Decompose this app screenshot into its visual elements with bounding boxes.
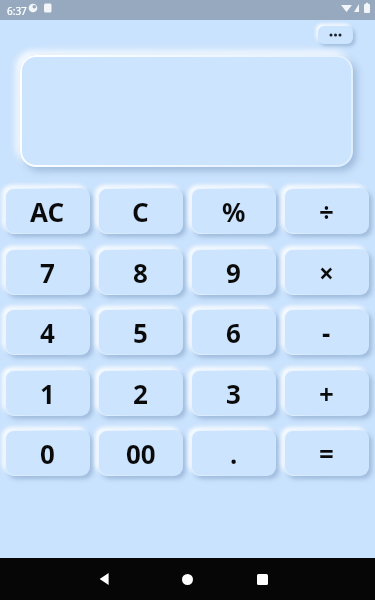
button[interactable]: = [284, 430, 369, 476]
button[interactable]: % [191, 188, 276, 234]
staticText: . [230, 436, 238, 471]
button[interactable]: 00 [98, 430, 183, 476]
staticText: 0 [40, 436, 55, 471]
staticText: 6 [226, 315, 241, 350]
button[interactable]: 8 [98, 249, 183, 295]
button[interactable]: 3 [191, 370, 276, 416]
button[interactable]: 5 [98, 309, 183, 355]
button[interactable]: 0 [5, 430, 90, 476]
staticText: 6:37 [7, 4, 27, 18]
staticText: 2 [133, 376, 148, 411]
button[interactable] [81, 558, 129, 600]
staticText: 8 [133, 255, 148, 290]
staticText: 7 [40, 255, 55, 290]
staticText: AC [30, 194, 65, 229]
button[interactable]: . [191, 430, 276, 476]
button[interactable]: 1 [5, 370, 90, 416]
button[interactable]: ÷ [284, 188, 369, 234]
staticText: 1 [40, 376, 55, 411]
staticText: 4 [40, 315, 55, 350]
staticText: 9 [226, 255, 241, 290]
button[interactable]: AC [5, 188, 90, 234]
button[interactable]: × [284, 249, 369, 295]
button[interactable]: 6 [191, 309, 276, 355]
staticText: + [319, 376, 334, 411]
staticText: 3 [226, 376, 241, 411]
button[interactable] [163, 558, 211, 600]
button[interactable]: 7 [5, 249, 90, 295]
staticText: = [319, 436, 334, 471]
button[interactable]: 4 [5, 309, 90, 355]
button[interactable]: 2 [98, 370, 183, 416]
staticText: - [322, 315, 331, 350]
staticText: % [222, 194, 246, 229]
staticText: ÷ [319, 194, 334, 229]
staticText: × [319, 255, 334, 290]
button[interactable] [318, 26, 353, 44]
button[interactable]: - [284, 309, 369, 355]
button[interactable] [238, 558, 286, 600]
button[interactable]: + [284, 370, 369, 416]
button[interactable]: C [98, 188, 183, 234]
staticText: C [132, 194, 149, 229]
staticText: 5 [133, 315, 148, 350]
staticText: 00 [126, 436, 156, 471]
button[interactable]: 9 [191, 249, 276, 295]
